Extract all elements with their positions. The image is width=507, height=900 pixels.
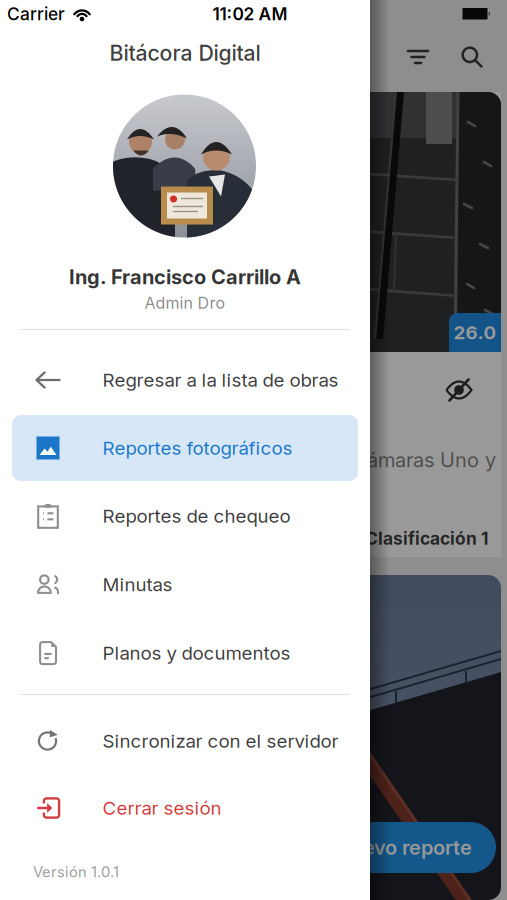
staticText: Clasificación 1 [365,528,488,549]
staticText: 11:02 AM [212,4,287,24]
button[interactable] [454,39,490,75]
button[interactable]: Sincronizar con el servidor [12,708,358,774]
button[interactable]: Cerrar sesión [12,775,358,841]
staticText: Sincronizar con el servidor [102,730,338,752]
button[interactable] [400,39,436,75]
staticText: Ing. Francisco Carrillo A [69,265,301,289]
button[interactable]: Reportes fotográficos [12,415,358,481]
staticText: Versión 1.0.1 [33,863,119,881]
staticText: 26.0 [453,321,496,343]
button[interactable]: Reportes de chequeo [12,483,358,549]
staticText: Minutas [102,573,172,595]
staticText: Reportes de chequeo [102,505,290,527]
staticText: Bitácora Digital [109,40,260,66]
staticText: Planos y documentos [102,642,290,664]
staticText: Recámaras Uno y [330,448,496,472]
button[interactable]: Nuevo reporte [312,822,496,873]
staticText: Reportes fotográficos [102,437,292,459]
staticText: Regresar a la lista de obras [102,369,338,391]
staticText: Cerrar sesión [102,797,221,819]
button[interactable] [439,372,479,408]
staticText: Carrier [7,4,65,24]
staticText: Admin Dro [144,294,225,312]
button[interactable]: Regresar a la lista de obras [12,347,358,413]
button[interactable]: Planos y documentos [12,620,358,686]
button[interactable]: Minutas [12,551,358,617]
staticText: Nuevo reporte [336,836,472,859]
